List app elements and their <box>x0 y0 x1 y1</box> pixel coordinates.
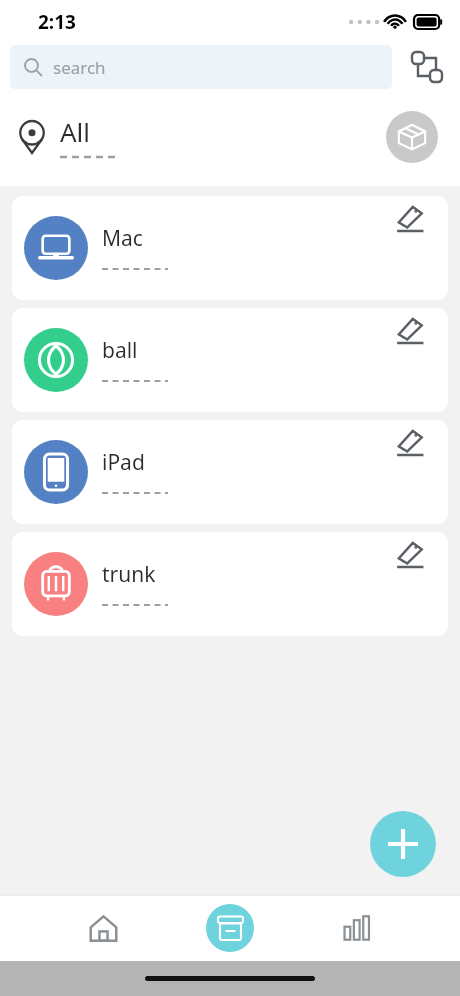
staticText: Mac <box>102 224 143 253</box>
button[interactable]: Edit Mac <box>390 202 430 236</box>
button[interactable]: Add item <box>370 811 436 877</box>
button[interactable]: ball <box>12 308 448 412</box>
button[interactable]: Statistics <box>331 902 383 954</box>
button[interactable]: search <box>10 45 392 89</box>
button[interactable]: Packages <box>386 111 438 163</box>
button[interactable]: Items <box>206 904 254 952</box>
button[interactable]: Home <box>77 902 129 954</box>
button[interactable]: iPad <box>12 420 448 524</box>
staticText: trunk <box>102 560 156 589</box>
staticText: 2:13 <box>38 9 76 35</box>
button[interactable]: Groups <box>404 44 450 90</box>
staticText: iPad <box>102 448 145 477</box>
button[interactable]: trunk <box>12 532 448 636</box>
staticText: All <box>60 114 91 149</box>
button[interactable]: Mac <box>12 196 448 300</box>
button[interactable]: All <box>0 102 460 172</box>
staticText: ball <box>102 336 138 365</box>
staticText: search <box>53 56 106 79</box>
button[interactable]: Edit ball <box>390 314 430 348</box>
button[interactable]: Edit iPad <box>390 426 430 460</box>
button[interactable]: Edit trunk <box>390 538 430 572</box>
